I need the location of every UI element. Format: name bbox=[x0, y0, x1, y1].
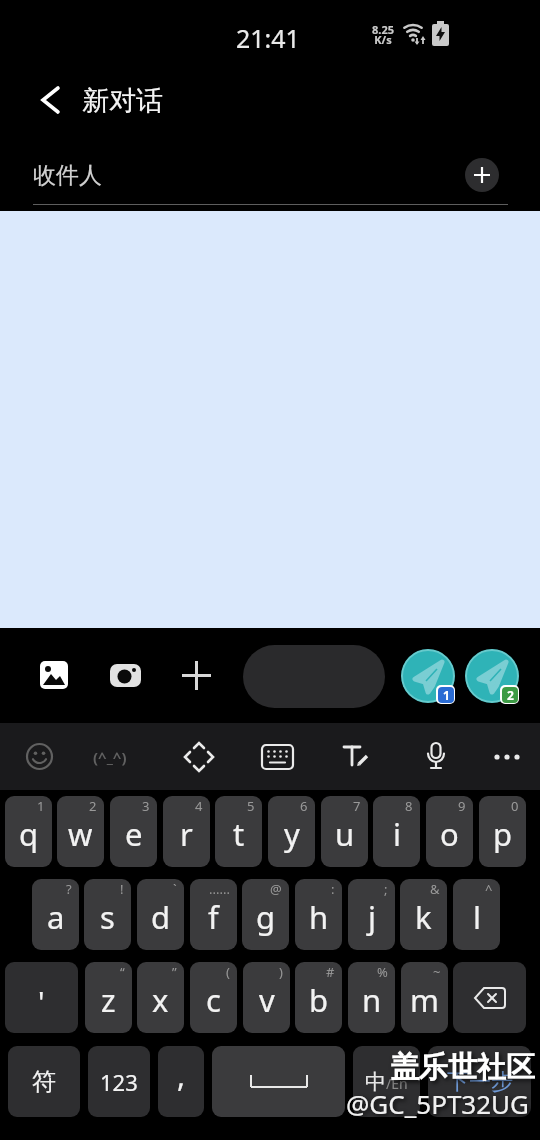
staticText: 收件人 bbox=[33, 161, 102, 190]
staticText: a bbox=[47, 896, 65, 938]
staticText: 9 bbox=[458, 797, 466, 815]
staticText: 21:41 bbox=[236, 21, 300, 55]
button[interactable]: i bbox=[373, 796, 420, 867]
button[interactable]: o bbox=[426, 796, 473, 867]
button[interactable]: ' bbox=[5, 962, 78, 1033]
button[interactable] bbox=[243, 645, 385, 708]
button[interactable] bbox=[465, 158, 499, 192]
staticText: 符 bbox=[32, 1067, 56, 1097]
staticText: g bbox=[256, 896, 276, 938]
button[interactable]: a bbox=[32, 879, 79, 950]
staticText: 下一步 bbox=[447, 1068, 513, 1096]
staticText: j bbox=[368, 896, 376, 938]
staticText: i bbox=[393, 813, 401, 855]
button[interactable]: 下一步 bbox=[428, 1046, 531, 1117]
button[interactable]: g bbox=[242, 879, 289, 950]
staticText: q bbox=[19, 813, 39, 855]
staticText: 新对话 bbox=[82, 84, 163, 118]
staticText: 0 bbox=[511, 797, 519, 815]
button[interactable]: m bbox=[401, 962, 448, 1033]
staticText: c bbox=[206, 979, 221, 1021]
button[interactable]: (^_^) bbox=[93, 747, 127, 767]
staticText: ? bbox=[66, 880, 72, 898]
button[interactable]: v bbox=[243, 962, 290, 1033]
staticText: ~ bbox=[433, 963, 441, 981]
staticText: 6 bbox=[300, 797, 308, 815]
staticText: 2 bbox=[89, 797, 97, 815]
button[interactable] bbox=[417, 738, 454, 775]
button[interactable] bbox=[401, 649, 455, 703]
button[interactable]: l bbox=[453, 879, 500, 950]
button[interactable] bbox=[453, 962, 526, 1033]
staticText: k bbox=[415, 896, 432, 938]
staticText: e bbox=[125, 813, 143, 855]
button[interactable]: w bbox=[57, 796, 104, 867]
staticText: & bbox=[430, 880, 440, 898]
button[interactable]: 中/En bbox=[353, 1046, 420, 1117]
button[interactable]: 符 bbox=[8, 1046, 80, 1117]
button[interactable] bbox=[40, 87, 62, 113]
staticText: 1 bbox=[37, 797, 45, 815]
button[interactable]: t bbox=[215, 796, 262, 867]
button[interactable]: f bbox=[190, 879, 237, 950]
button[interactable]: 收件人 bbox=[0, 142, 540, 211]
button[interactable] bbox=[212, 1046, 345, 1117]
button[interactable]: k bbox=[400, 879, 447, 950]
button[interactable] bbox=[488, 738, 525, 775]
button[interactable]: 123 bbox=[88, 1046, 150, 1117]
button[interactable] bbox=[21, 738, 58, 775]
staticText: ! bbox=[120, 880, 124, 898]
button[interactable]: b bbox=[295, 962, 342, 1033]
button[interactable]: u bbox=[321, 796, 368, 867]
button[interactable]: n bbox=[348, 962, 395, 1033]
button[interactable]: s bbox=[84, 879, 131, 950]
button[interactable] bbox=[36, 657, 72, 693]
staticText: o bbox=[440, 813, 459, 855]
staticText: ( bbox=[226, 963, 230, 981]
staticText: s bbox=[100, 896, 115, 938]
button[interactable]: r bbox=[163, 796, 210, 867]
button[interactable] bbox=[259, 738, 296, 775]
staticText: m bbox=[410, 979, 439, 1021]
staticText: 1 bbox=[443, 687, 450, 703]
staticText: 3 bbox=[142, 797, 150, 815]
staticText: ” bbox=[172, 963, 177, 981]
staticText: 5 bbox=[247, 797, 255, 815]
button[interactable]: z bbox=[85, 962, 132, 1033]
staticText: # bbox=[326, 963, 335, 981]
staticText: @ bbox=[270, 880, 282, 898]
staticText: b bbox=[309, 979, 329, 1021]
button[interactable]: q bbox=[5, 796, 52, 867]
button[interactable] bbox=[107, 657, 143, 693]
button[interactable] bbox=[180, 738, 217, 775]
staticText: 中/En bbox=[365, 1069, 408, 1095]
staticText: u bbox=[335, 813, 355, 855]
staticText: 8 bbox=[405, 797, 413, 815]
button[interactable]: j bbox=[348, 879, 395, 950]
staticText: r bbox=[180, 813, 193, 855]
button[interactable]: , bbox=[158, 1046, 204, 1117]
staticText: f bbox=[208, 896, 219, 938]
staticText: d bbox=[151, 896, 171, 938]
staticText: ; bbox=[384, 880, 388, 898]
button[interactable]: d bbox=[137, 879, 184, 950]
staticText: : bbox=[331, 880, 335, 898]
staticText: t bbox=[233, 813, 245, 855]
staticText: , bbox=[177, 1055, 186, 1096]
button[interactable] bbox=[338, 738, 375, 775]
staticText: y bbox=[284, 813, 300, 855]
button[interactable] bbox=[178, 657, 214, 693]
button[interactable]: p bbox=[479, 796, 526, 867]
staticText: 4 bbox=[195, 797, 203, 815]
button[interactable]: y bbox=[268, 796, 315, 867]
button[interactable]: e bbox=[110, 796, 157, 867]
button[interactable] bbox=[465, 649, 519, 703]
button[interactable]: h bbox=[295, 879, 342, 950]
staticText: w bbox=[68, 813, 93, 855]
staticText: 8.25 K/s bbox=[369, 22, 397, 47]
button[interactable]: c bbox=[190, 962, 237, 1033]
staticText: ^ bbox=[485, 880, 493, 898]
button[interactable]: x bbox=[137, 962, 184, 1033]
staticText: ' bbox=[38, 982, 45, 1021]
staticText: 2 bbox=[507, 687, 514, 703]
